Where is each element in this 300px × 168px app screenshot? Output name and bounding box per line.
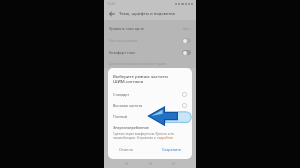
staticText: Уровень глаз ярче: [109, 26, 144, 31]
button[interactable]: Стандарт: [113, 89, 187, 100]
button[interactable]: Toggle: [182, 38, 191, 43]
button[interactable]: Ночной режим: [104, 34, 196, 46]
staticText: Сделать экран комфортным. Яркость и эк-: [113, 132, 175, 136]
staticText: Тема, шрифты и подсветка: [119, 11, 175, 17]
button[interactable]: Navigation button: [125, 162, 128, 165]
staticText: Выберите режим частоты ШИМ-сигнала: [113, 73, 168, 85]
button[interactable]: Полный: [113, 111, 187, 122]
button[interactable]: Комфорт глаз: [104, 46, 196, 58]
button[interactable]: Toggle: [182, 50, 191, 55]
button[interactable]: Отмена: [113, 145, 139, 154]
button[interactable]: Back: [107, 9, 116, 18]
staticText: Авто: [183, 26, 191, 31]
staticText: Комфорт глаз: [109, 50, 135, 55]
button[interactable]: Navigation button: [172, 162, 175, 165]
button[interactable]: Navigation button: [149, 162, 152, 165]
staticText: Энергопотребление: [113, 125, 149, 130]
staticText: Отмена: [119, 147, 133, 152]
staticText: Ночной режим: [109, 38, 138, 43]
staticText: Сохранить: [162, 147, 181, 152]
staticText: подробнее: [157, 136, 173, 140]
button[interactable]: Высокая частота: [113, 100, 187, 111]
staticText: 10:24: [107, 2, 116, 6]
button[interactable]: Сохранить: [156, 145, 187, 154]
button[interactable]: Уровень глаз ярче: [104, 22, 196, 34]
staticText: Высокая частота: [113, 103, 143, 108]
staticText: номия батареи. Устройство и: [113, 136, 157, 140]
staticText: Полный: [113, 114, 128, 119]
staticText: Стандарт: [113, 92, 130, 97]
staticText: Дополнительные настройки экрана: [109, 61, 167, 65]
